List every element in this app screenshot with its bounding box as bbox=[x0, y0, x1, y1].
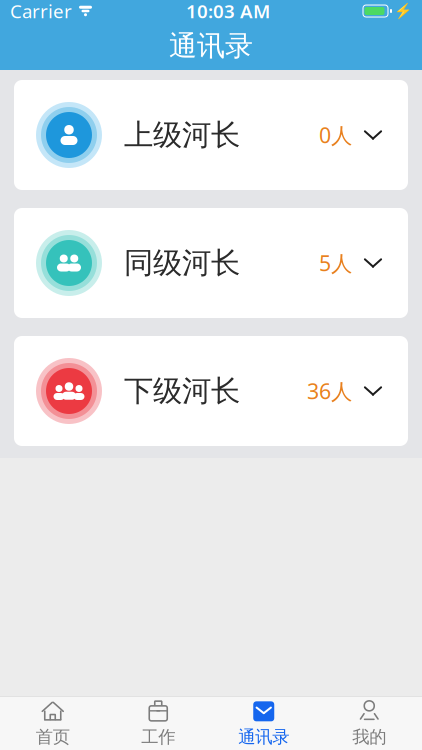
staticText: 通讯录 bbox=[169, 29, 253, 63]
button[interactable]: 我的 bbox=[316, 697, 422, 750]
button[interactable]: 下级河长 bbox=[14, 336, 408, 446]
staticText: 0人 bbox=[319, 121, 352, 149]
staticText: 36人 bbox=[307, 377, 352, 405]
button[interactable]: 首页 bbox=[0, 697, 105, 750]
staticText: 下级河长 bbox=[124, 373, 240, 409]
button[interactable]: 通讯录 bbox=[211, 697, 316, 750]
button[interactable]: 同级河长 bbox=[14, 208, 408, 318]
staticText: 5人 bbox=[319, 249, 352, 277]
staticText: 10:03 AM bbox=[186, 0, 270, 23]
staticText: 工作 bbox=[141, 726, 175, 748]
staticText: 同级河长 bbox=[124, 245, 240, 281]
button[interactable]: 上级河长 bbox=[14, 80, 408, 190]
staticText: 上级河长 bbox=[124, 117, 240, 153]
staticText: 通讯录 bbox=[238, 726, 289, 748]
staticText: ⚡ bbox=[394, 3, 412, 19]
button[interactable]: 工作 bbox=[105, 697, 211, 750]
staticText: 首页 bbox=[36, 726, 70, 748]
staticText: 我的 bbox=[352, 726, 386, 748]
staticText: Carrier bbox=[10, 0, 72, 23]
